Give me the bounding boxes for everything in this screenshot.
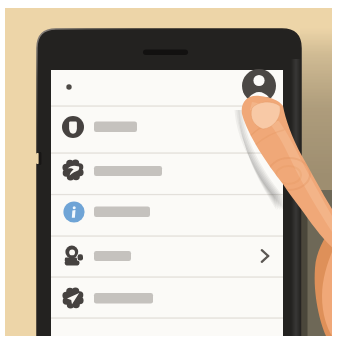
button[interactable]: Hand tapping account avatar on phone set…	[0, 0, 341, 341]
